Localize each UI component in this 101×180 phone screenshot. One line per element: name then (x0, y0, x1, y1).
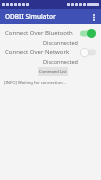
staticText: Disconnected (0, 58, 78, 65)
button[interactable]: Switch off (80, 48, 96, 57)
button[interactable]: Connect Over Network (0, 46, 101, 58)
staticText: Connect Over Bluetooth (5, 29, 78, 37)
staticText: Command List (39, 69, 67, 74)
button[interactable]: Command List (38, 67, 68, 76)
button[interactable]: Connect Over Bluetooth (0, 27, 101, 39)
button[interactable]: Switch on (80, 29, 96, 38)
staticText: Disconnected (0, 39, 78, 46)
staticText: ODBII Simulator (5, 12, 56, 21)
staticText: Connect Over Network (5, 48, 78, 56)
button[interactable]: More options (87, 10, 101, 24)
staticText: [INFO] Waiting for connection... (4, 80, 66, 86)
